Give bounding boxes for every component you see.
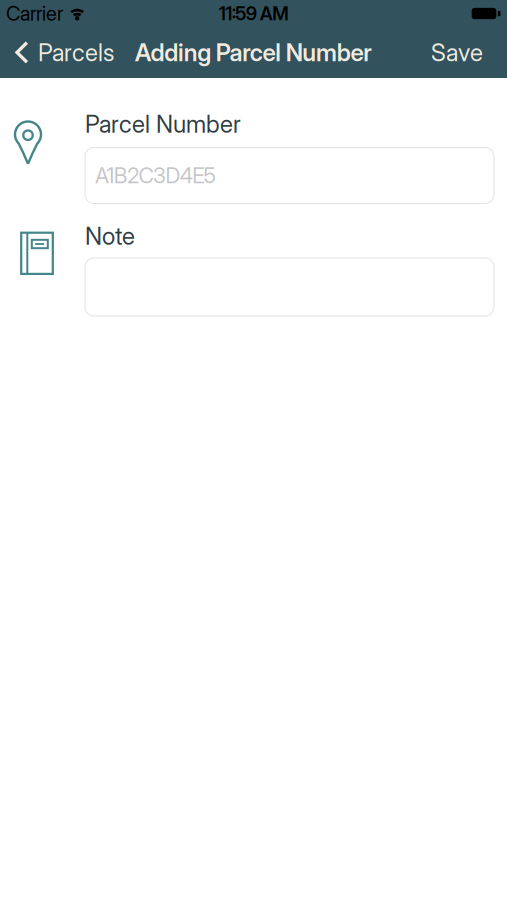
staticText: Carrier bbox=[6, 2, 63, 25]
staticText: A1B2C3D4E5 bbox=[95, 163, 216, 188]
staticText: 11:59 AM bbox=[219, 2, 288, 24]
staticText: Note bbox=[85, 222, 135, 250]
staticText: Parcels bbox=[38, 38, 114, 67]
button[interactable]: Save bbox=[431, 38, 507, 67]
staticText: Adding Parcel Number bbox=[135, 38, 372, 67]
button[interactable]: Parcel Number bbox=[85, 147, 494, 203]
button[interactable]: Back bbox=[0, 38, 114, 67]
staticText: Save bbox=[431, 38, 483, 67]
staticText: Parcel Number bbox=[85, 110, 241, 138]
